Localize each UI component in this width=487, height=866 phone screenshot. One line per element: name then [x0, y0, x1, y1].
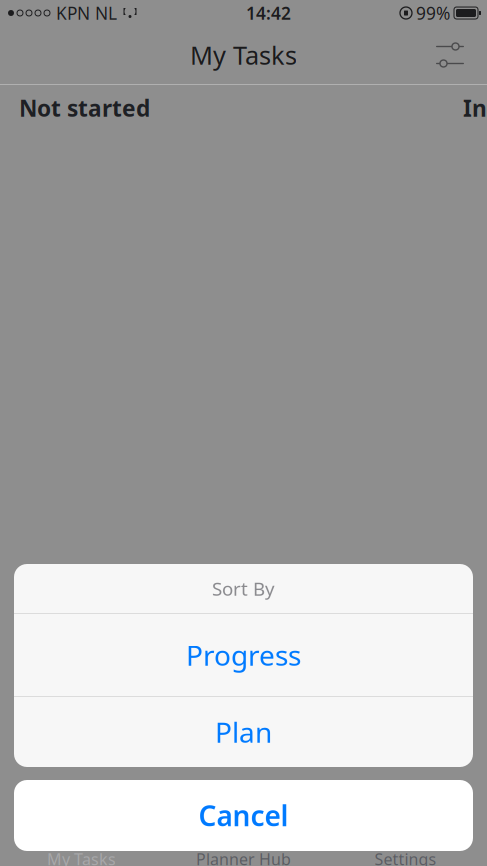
staticText: My Tasks	[47, 848, 116, 866]
staticText: Cancel	[198, 797, 288, 834]
button[interactable]: Plan	[14, 697, 473, 767]
staticText: Progress	[186, 636, 301, 674]
staticText: My Tasks	[190, 38, 297, 72]
button[interactable]: Cancel	[14, 780, 473, 851]
staticText: Not started	[19, 93, 150, 123]
staticText: 99%	[416, 1, 450, 24]
staticText: Settings	[374, 848, 436, 866]
staticText: Planner Hub	[196, 848, 291, 866]
button[interactable]: Planner Hub	[162, 844, 324, 866]
staticText: KPN NL	[56, 1, 117, 24]
staticText: Sort By	[212, 576, 275, 601]
button[interactable]: My Tasks	[0, 844, 162, 866]
staticText: In	[463, 93, 487, 123]
button[interactable]: Progress	[14, 614, 473, 696]
button[interactable]: Settings	[324, 844, 486, 866]
staticText: 14:42	[246, 1, 291, 24]
staticText: Plan	[215, 713, 272, 751]
button[interactable]: Sort and filter	[428, 33, 472, 77]
